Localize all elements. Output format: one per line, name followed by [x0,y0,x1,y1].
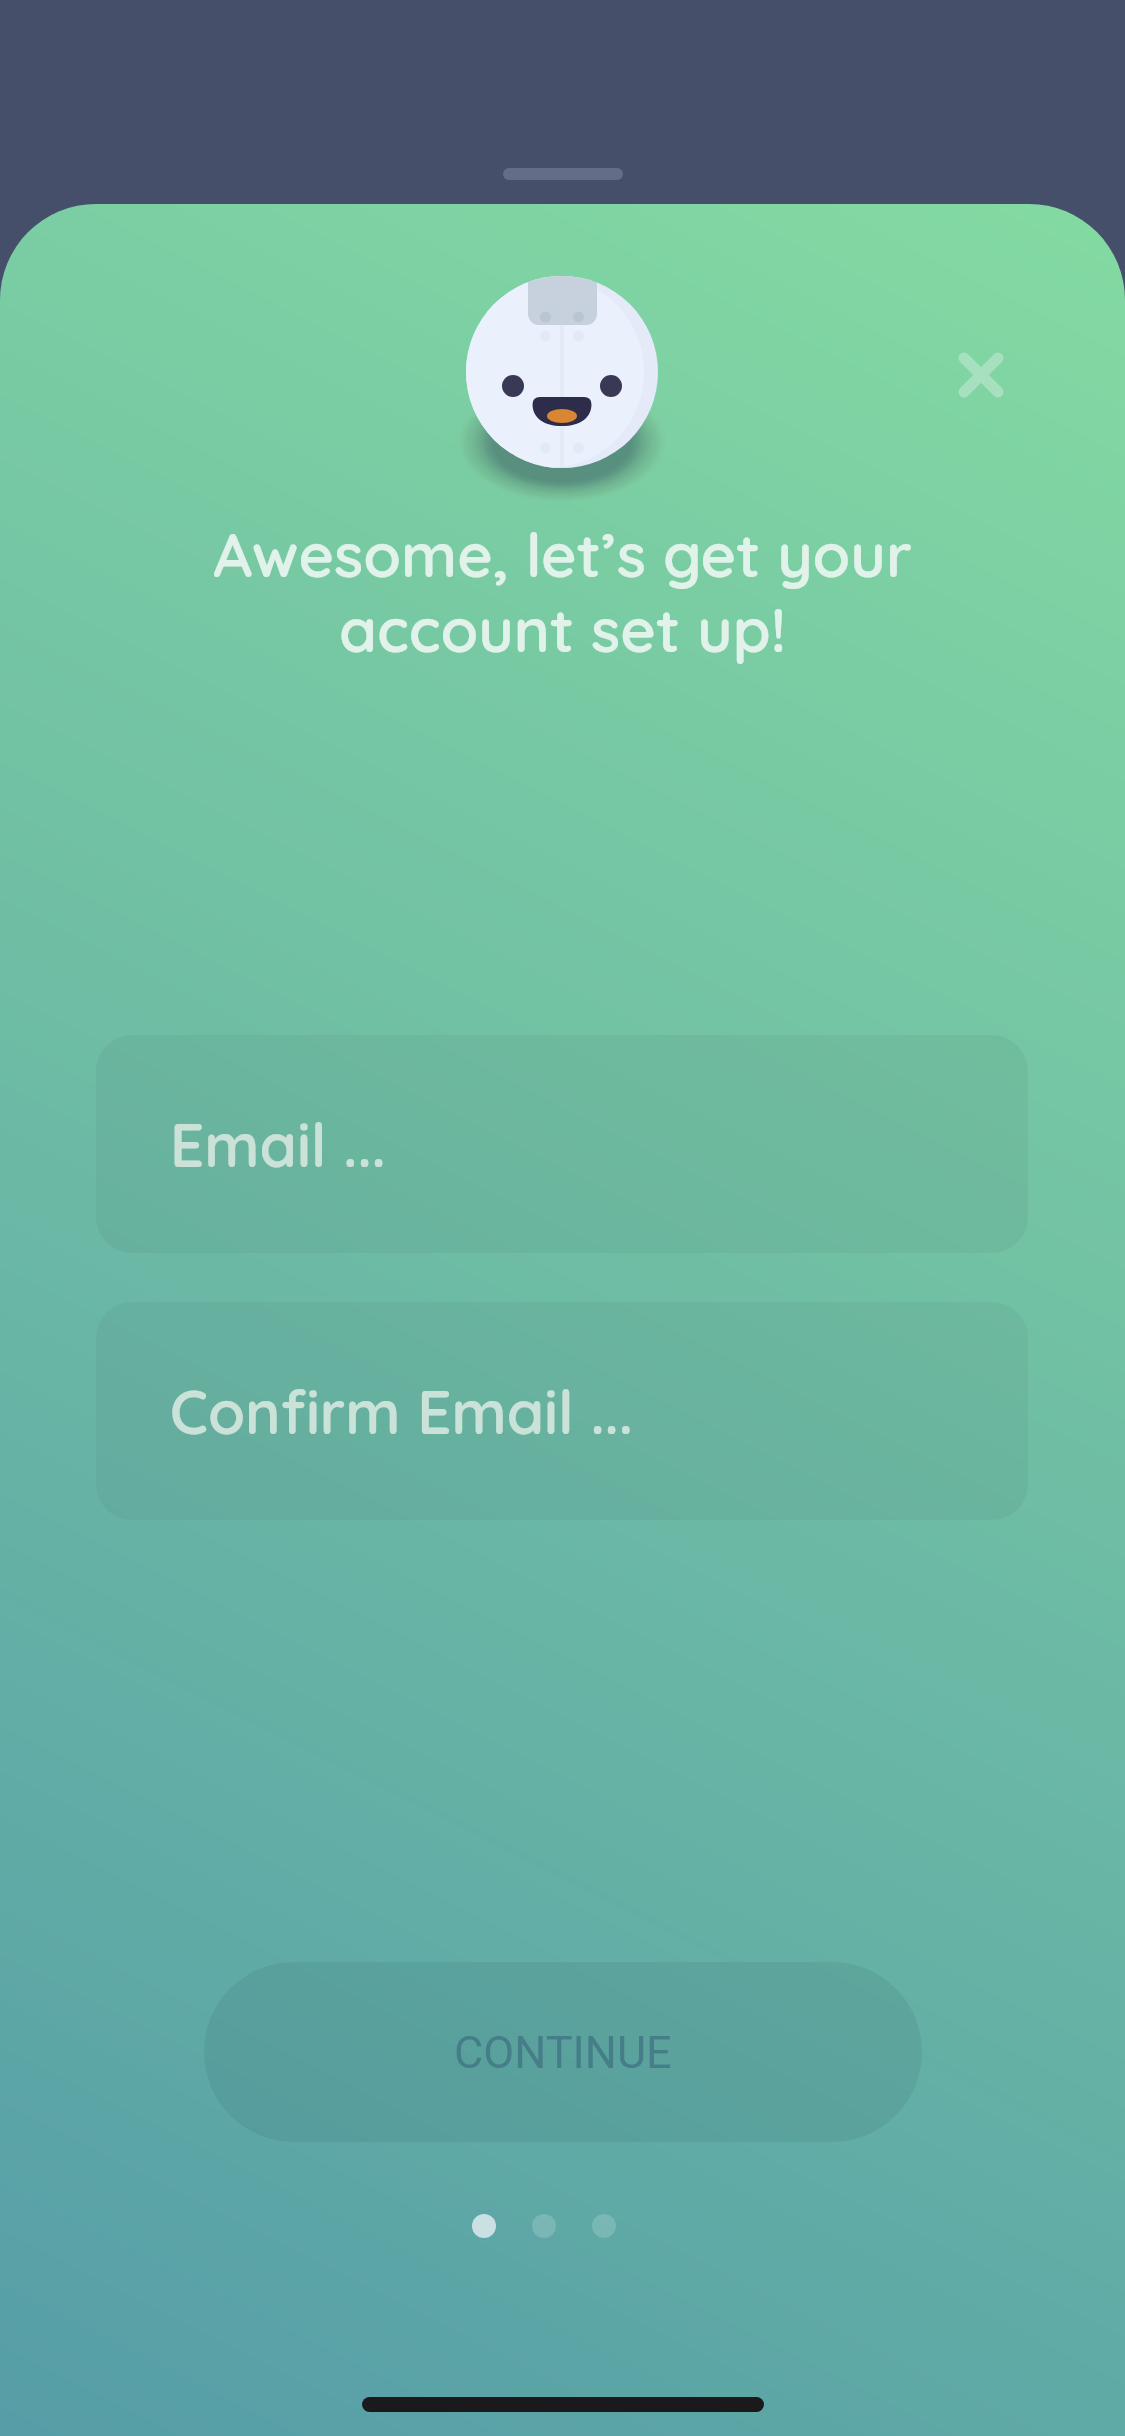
button[interactable]: Close [921,315,1041,435]
button[interactable]: CONTINUE [204,1962,922,2142]
staticText: Email ... [170,1107,386,1182]
button[interactable]: Confirm Email ... [96,1302,1028,1520]
staticText: Confirm Email ... [170,1374,633,1449]
staticText: CONTINUE [454,2026,672,2079]
button[interactable]: Email ... [96,1035,1028,1253]
staticText: Awesome, let’s get your account set up! [50,516,1075,667]
